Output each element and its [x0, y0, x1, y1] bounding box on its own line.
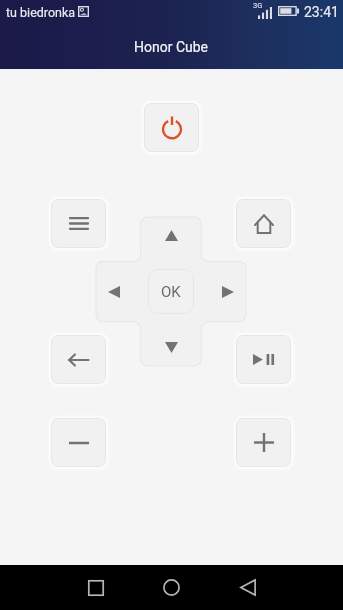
staticText: tu biedronka [6, 5, 76, 20]
button[interactable]: Home [236, 199, 291, 248]
staticText: 3G [253, 1, 263, 10]
button[interactable]: Play pause [236, 335, 291, 384]
button[interactable]: Back [231, 571, 264, 604]
button[interactable]: Menu [51, 199, 106, 248]
button[interactable]: Volume up [236, 418, 291, 467]
button[interactable]: Back [51, 335, 106, 384]
staticText: Honor Cube [134, 39, 209, 55]
button[interactable]: Home [155, 571, 188, 604]
button[interactable]: OK [148, 269, 194, 314]
staticText: 23:41 [304, 4, 339, 20]
button[interactable]: Recents [79, 571, 112, 604]
staticText: OK [161, 283, 181, 301]
button[interactable]: Volume down [51, 418, 106, 467]
button[interactable]: Power [144, 103, 199, 152]
